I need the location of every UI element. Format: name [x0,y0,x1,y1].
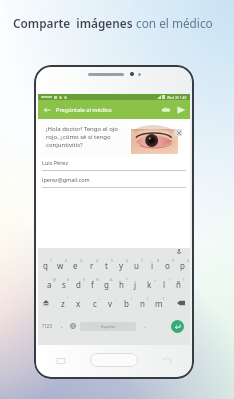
staticText: ?123 [42,323,52,329]
staticText: ( [169,277,171,282]
staticText: Español [101,324,116,329]
button[interactable]: q [39,259,52,270]
staticText: w [57,260,64,271]
staticText: . [144,322,146,330]
staticText: h [119,279,124,290]
button[interactable]: l [158,278,171,289]
button[interactable]: y [115,259,128,270]
staticText: / [163,296,165,301]
button[interactable]: k [143,278,156,289]
button[interactable]: z [56,297,69,308]
button[interactable]: c [88,297,101,308]
staticText: 9 [172,258,174,263]
staticText: j [134,279,137,290]
staticText: n [140,298,145,309]
button[interactable]: o [161,259,174,270]
staticText: 5 [111,258,113,263]
staticText: c [93,298,97,309]
staticText: 7 [141,258,143,263]
button[interactable]: ?123 [42,323,52,329]
staticText: ? [147,296,149,301]
button[interactable]: p [176,259,189,270]
button[interactable]: i [146,259,159,270]
staticText: 4 [96,258,98,263]
staticText: x [76,298,81,309]
staticText: 0 [187,258,189,263]
staticText: , [61,322,63,330]
staticText: t [105,260,108,271]
staticText: Wed 26 1:45 [167,95,187,100]
button[interactable]: g [100,278,113,289]
staticText: v [108,298,113,309]
staticText: b [124,298,129,309]
staticText: 2 [65,258,67,263]
button[interactable]: Back [43,106,51,114]
button[interactable]: ñ [172,278,185,289]
staticText: Luis Pérez [42,159,68,166]
staticText: ! [131,296,132,301]
button[interactable]: h [115,278,128,289]
staticText: 6 [126,258,128,263]
button[interactable]: Attach photo [162,106,170,114]
staticText: l [163,279,166,290]
staticText: a [47,279,52,290]
staticText: p [180,260,185,271]
staticText: g [104,279,109,290]
button[interactable]: u [130,259,143,270]
staticText: z [61,298,65,309]
staticText: s [62,279,66,290]
button[interactable]: w [54,259,67,270]
button[interactable]: t [100,259,113,270]
button[interactable]: r [85,259,98,270]
staticText: e [73,260,78,271]
staticText: + [154,277,156,282]
staticText: ' [83,296,84,301]
staticText: Pregúntale al médico [56,106,112,114]
button[interactable]: n [136,297,149,308]
button[interactable]: f [86,278,99,289]
button[interactable]: b [120,297,133,308]
button[interactable]: m [152,297,165,308]
staticText: k [147,279,152,290]
staticText: : [99,296,100,301]
staticText: " [67,296,69,301]
staticText: ¡Hola doctor! Tengo el ojo rojo, ¿cómo s… [46,125,119,149]
staticText: ; [115,296,116,301]
staticText: r [90,260,94,271]
button[interactable]: s [57,278,70,289]
button[interactable]: e [69,259,82,270]
button[interactable]: Change language [70,323,76,329]
staticText: o [165,260,170,271]
staticText: q [43,260,48,271]
staticText: 8 [157,258,159,263]
button[interactable]: x [72,297,85,308]
button[interactable]: Español [80,322,136,331]
button[interactable]: Enter [171,320,184,333]
staticText: Comparte imágenes [13,15,136,31]
staticText: i [151,260,154,271]
staticText: & [110,277,113,282]
button[interactable]: d [72,278,85,289]
staticText: m [155,298,163,309]
staticText: con el médico [136,15,213,31]
staticText: ) [183,277,185,282]
staticText: f [91,279,94,290]
staticText: @ [53,277,57,282]
button[interactable]: Shift [42,299,50,307]
staticText: d [76,279,81,290]
button[interactable]: j [129,278,142,289]
staticText: 3 [80,258,82,263]
staticText: u [134,260,139,271]
button[interactable]: Backspace [177,299,185,307]
staticText: y [119,260,124,271]
button[interactable]: Remove photo [175,129,182,136]
button[interactable]: a [43,278,56,289]
button[interactable]: v [104,297,117,308]
button[interactable]: Send [176,105,186,115]
staticText: ñ [176,279,181,290]
staticText: 1 [50,258,52,263]
staticText: % [96,277,99,282]
staticText: * [126,277,128,282]
staticText: $ [83,277,85,282]
staticText: - [140,277,142,282]
